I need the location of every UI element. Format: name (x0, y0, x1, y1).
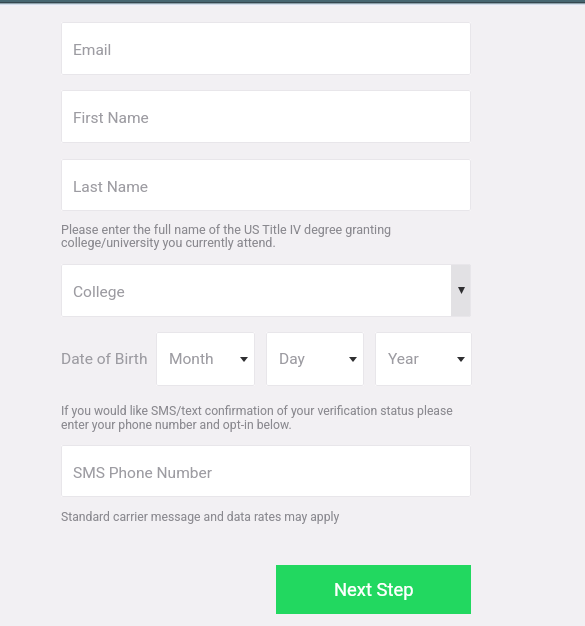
button[interactable]: Day (266, 332, 364, 386)
staticText: First Name (73, 109, 149, 127)
staticText: Please enter the full name of the US Tit… (61, 222, 392, 250)
button[interactable]: Next Step (276, 565, 471, 614)
staticText: Date of Birth (61, 350, 148, 368)
staticText: Email (73, 41, 112, 59)
staticText: Next Step (334, 579, 414, 601)
staticText: If you would like SMS/text confirmation … (61, 404, 453, 432)
button[interactable]: SMS Phone Number (61, 445, 471, 497)
staticText: Day (279, 350, 349, 368)
staticText: College (73, 283, 451, 301)
button[interactable]: Month (156, 332, 255, 386)
button[interactable]: Email (61, 22, 471, 75)
staticText: Last Name (73, 178, 148, 196)
staticText: SMS Phone Number (73, 464, 212, 482)
button[interactable]: College (61, 264, 471, 317)
staticText: Standard carrier message and data rates … (61, 510, 340, 524)
button[interactable]: Year (375, 332, 472, 386)
staticText: Month (169, 350, 240, 368)
other: Open college list (451, 264, 471, 317)
button[interactable]: Last Name (61, 159, 471, 211)
button[interactable]: First Name (61, 90, 471, 143)
staticText: Year (388, 350, 457, 368)
